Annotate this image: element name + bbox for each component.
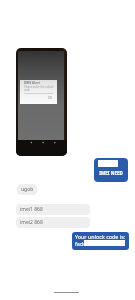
button[interactable]: imei2 868 — [16, 217, 90, 228]
button[interactable]: imei1 868 — [16, 204, 90, 215]
staticText: OK — [48, 96, 53, 100]
staticText: imei1 868 — [20, 206, 43, 213]
staticText: ugob — [21, 186, 34, 193]
staticText: IMEI NEED — [96, 170, 126, 176]
staticText: fadct — [75, 240, 88, 247]
staticText: Your unlock code is: — [75, 233, 126, 240]
staticText: Please enter the unlock code — [24, 85, 54, 92]
staticText: IMEI Alert — [24, 81, 40, 85]
staticText: imei2 868 — [20, 219, 43, 226]
button[interactable]: IMEI NEED — [94, 158, 128, 182]
button[interactable]: Your unlock code is: — [72, 232, 129, 250]
button[interactable]: ugob — [17, 184, 37, 195]
